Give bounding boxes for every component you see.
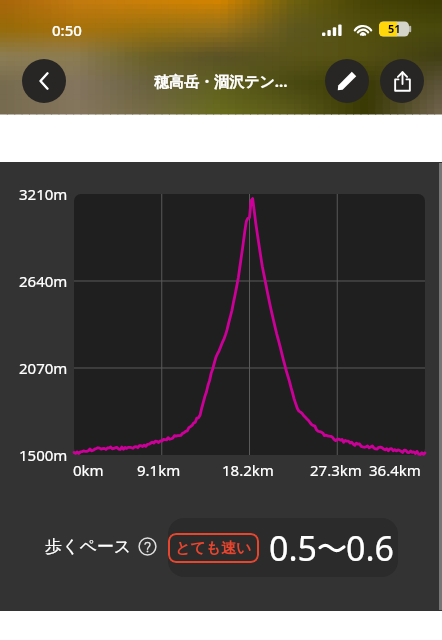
staticText: 0.5 <box>269 525 318 571</box>
button[interactable]: 歩くペース <box>45 532 157 560</box>
button[interactable]: Edit <box>325 59 369 103</box>
staticText: 9.1km <box>137 460 181 480</box>
staticText: 2070m <box>19 358 68 378</box>
other: Help <box>138 537 157 556</box>
button[interactable]: とても速い <box>168 518 398 577</box>
staticText: 27.3km <box>310 460 362 480</box>
staticText: 0:50 <box>52 20 82 40</box>
staticText: 歩くペース <box>45 536 132 557</box>
staticText: 穂高岳・涸沢テン… <box>154 71 288 91</box>
button[interactable]: Share <box>380 59 424 103</box>
staticText: 2640m <box>19 271 68 291</box>
staticText: とても速い <box>175 539 252 558</box>
staticText: 0km <box>73 460 104 480</box>
staticText: 18.2km <box>222 460 274 480</box>
button[interactable]: Back <box>22 59 66 103</box>
staticText: 1500m <box>19 445 68 465</box>
staticText: 3210m <box>19 184 68 204</box>
staticText: 51 <box>388 21 401 36</box>
staticText: 36.4km <box>369 460 421 480</box>
staticText: 0.6 <box>346 525 395 571</box>
